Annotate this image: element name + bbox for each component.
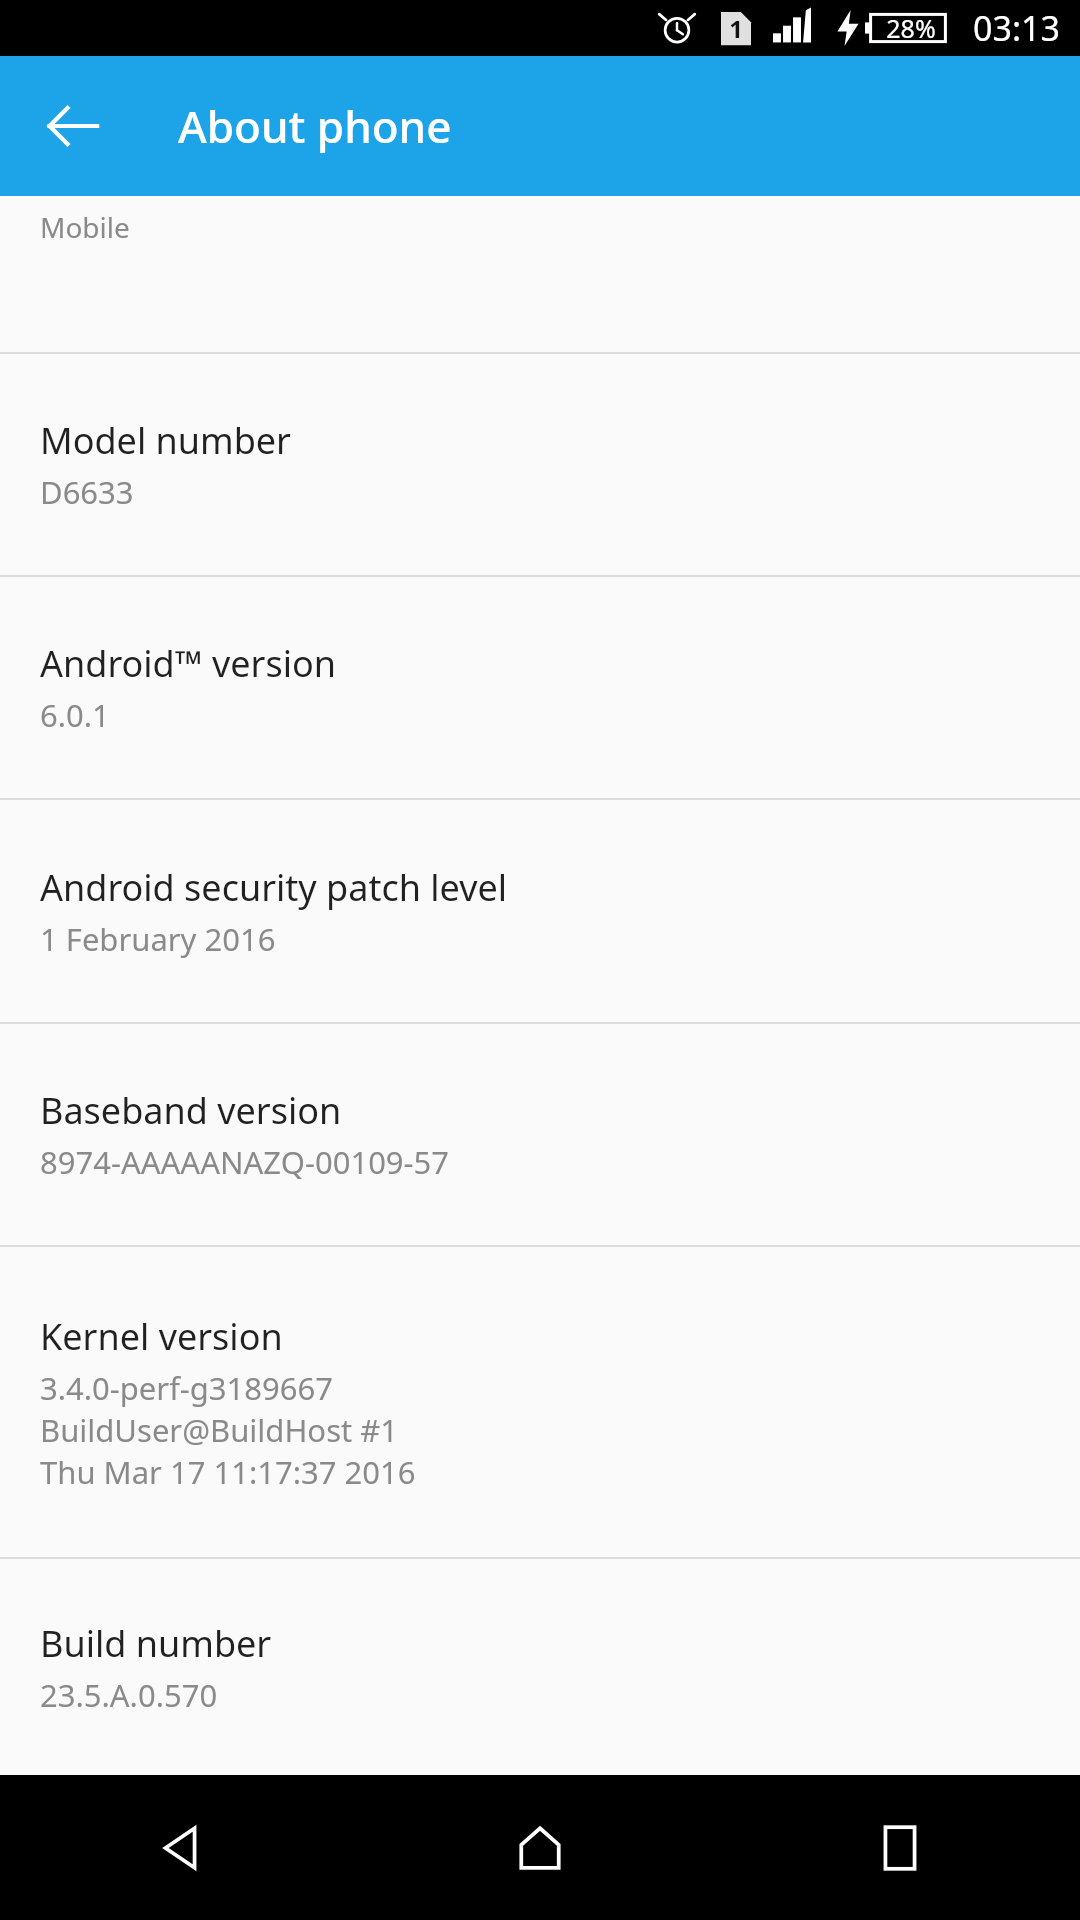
staticText: 3.4.0-perf-g3189667	[40, 1367, 333, 1409]
button[interactable]: Mobile	[0, 196, 1080, 352]
staticText: 03:13	[973, 5, 1060, 51]
button[interactable]: Android™ version	[0, 577, 1080, 798]
staticText: Thu Mar 17 11:17:37 2016	[40, 1451, 416, 1493]
button[interactable]: Back	[0, 1775, 360, 1920]
button[interactable]: Baseband version	[0, 1024, 1080, 1245]
button[interactable]: Model number	[0, 354, 1080, 575]
staticText: Model number	[40, 416, 291, 465]
staticText: 8974-AAAAANAZQ-00109-57	[40, 1141, 450, 1183]
button[interactable]: Home	[360, 1775, 720, 1920]
staticText: Build number	[40, 1619, 272, 1668]
button[interactable]: Kernel version	[0, 1247, 1080, 1557]
staticText: 28%	[886, 11, 936, 45]
staticText: D6633	[40, 471, 134, 513]
staticText: Baseband version	[40, 1086, 342, 1135]
button[interactable]: Android security patch level	[0, 800, 1080, 1022]
staticText: 1 February 2016	[40, 918, 276, 960]
staticText: 6.0.1	[40, 694, 110, 736]
staticText: Android™ version	[40, 639, 336, 688]
button[interactable]: Recent apps	[720, 1775, 1080, 1920]
staticText: 1	[729, 12, 743, 45]
staticText: Mobile	[40, 208, 130, 246]
staticText: About phone	[178, 96, 452, 156]
button[interactable]: Back	[24, 78, 120, 174]
staticText: Android security patch level	[40, 863, 508, 912]
staticText: BuildUser@BuildHost #1	[40, 1409, 398, 1451]
button[interactable]: Build number	[0, 1559, 1080, 1775]
staticText: Kernel version	[40, 1312, 283, 1361]
staticText: 23.5.A.0.570	[40, 1674, 218, 1716]
